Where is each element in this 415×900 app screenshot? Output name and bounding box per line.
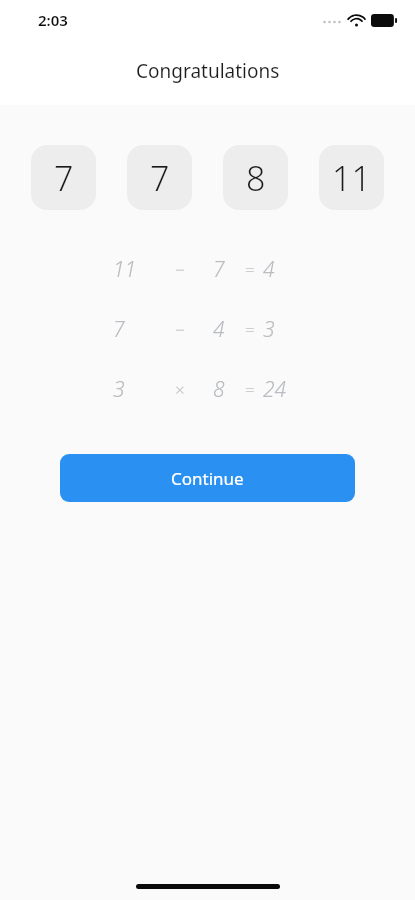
staticText: 7 [113, 315, 159, 344]
staticText: 11 [332, 155, 371, 201]
staticText: 8 [246, 155, 266, 201]
staticText: 7 [150, 155, 170, 201]
staticText: 4 [263, 255, 303, 284]
button[interactable]: 7 [31, 145, 96, 210]
staticText: 2:03 [38, 10, 68, 30]
staticText: 24 [263, 375, 303, 404]
button[interactable]: 8 [223, 145, 288, 210]
button[interactable]: 7 [127, 145, 192, 210]
staticText: 8 [213, 375, 225, 404]
button[interactable]: 11 [319, 145, 384, 210]
staticText: − [175, 258, 185, 281]
staticText: 3 [263, 315, 303, 344]
staticText: Continue [171, 467, 244, 490]
staticText: Congratulations [136, 58, 280, 84]
staticText: 3 [113, 375, 159, 404]
staticText: 7 [54, 155, 74, 201]
staticText: = [245, 318, 255, 341]
staticText: 7 [213, 255, 225, 284]
button[interactable]: Continue [60, 454, 355, 502]
staticText: − [175, 318, 185, 341]
staticText: 11 [113, 255, 159, 284]
staticText: = [245, 258, 255, 281]
staticText: = [245, 378, 255, 401]
staticText: 4 [213, 315, 225, 344]
staticText: × [175, 378, 185, 401]
